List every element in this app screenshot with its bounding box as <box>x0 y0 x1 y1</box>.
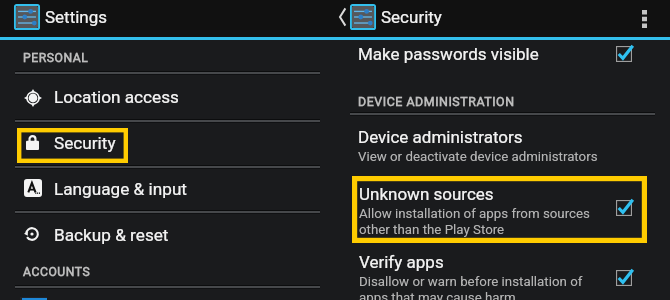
staticText: Disallow or warn before installation of … <box>359 274 583 300</box>
button[interactable] <box>335 176 670 243</box>
staticText: View or deactivate device administrators <box>358 149 598 165</box>
staticText: Verify apps <box>359 252 444 272</box>
staticText: PERSONAL <box>23 51 89 65</box>
staticText: Location access <box>54 87 179 107</box>
staticText: Device administrators <box>358 127 523 147</box>
button[interactable] <box>335 42 670 70</box>
staticText: Language & input <box>54 179 187 199</box>
staticText: Security <box>54 133 116 153</box>
staticText: Allow installation of apps from sources … <box>359 206 590 238</box>
staticText: Make passwords visible <box>358 44 539 64</box>
button[interactable] <box>0 78 320 118</box>
staticText: Security <box>381 7 442 27</box>
staticText: DEVICE ADMINISTRATION <box>358 94 515 109</box>
button[interactable] <box>335 120 670 165</box>
button[interactable] <box>0 294 320 300</box>
staticText: ACCOUNTS <box>23 265 91 279</box>
button[interactable] <box>335 248 670 300</box>
button[interactable] <box>0 0 335 37</box>
staticText: Settings <box>45 7 108 27</box>
button[interactable] <box>0 126 320 164</box>
button[interactable] <box>0 216 320 254</box>
button[interactable]: More options <box>630 0 658 37</box>
staticText: Backup & reset <box>54 225 169 245</box>
staticText: Unknown sources <box>359 184 494 204</box>
button[interactable] <box>0 172 320 210</box>
button[interactable]: Back <box>338 7 347 27</box>
